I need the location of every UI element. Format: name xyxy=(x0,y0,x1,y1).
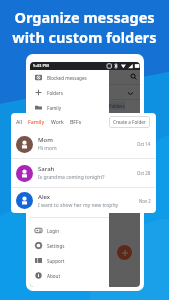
button[interactable]: Settings xyxy=(30,238,109,253)
staticText: Nov 2 xyxy=(139,198,151,204)
staticText: 5:43 PM xyxy=(33,63,49,69)
staticText: About xyxy=(47,273,61,279)
staticText: Mom xyxy=(38,136,53,144)
button[interactable]: About xyxy=(30,268,109,283)
button[interactable]: Blocked messages xyxy=(30,70,109,85)
button[interactable]: Login xyxy=(30,223,109,238)
staticText: All xyxy=(16,118,22,125)
button[interactable]: Mom xyxy=(11,130,156,158)
staticText: Work xyxy=(51,118,64,125)
button[interactable]: Alex xyxy=(11,188,156,213)
button[interactable]: Folders xyxy=(30,85,109,100)
button[interactable]: All xyxy=(16,118,22,125)
staticText: Is grandma coming tonight? xyxy=(38,174,105,181)
staticText: Family xyxy=(47,105,61,111)
staticText: Oct 14 xyxy=(137,141,151,147)
button[interactable]: Create a Folder xyxy=(109,116,150,128)
staticText: Organize messages xyxy=(14,7,155,27)
button[interactable]: New message xyxy=(117,245,132,260)
button[interactable]: Search xyxy=(130,73,137,80)
staticText: I want to show her my new trophy xyxy=(38,202,119,209)
staticText: BFFs xyxy=(70,118,82,125)
button[interactable]: Sarah xyxy=(11,159,156,187)
staticText: Family xyxy=(28,118,45,125)
staticText: Oct 28 xyxy=(137,170,151,176)
staticText: Alex xyxy=(38,193,51,201)
button[interactable]: Support xyxy=(30,253,109,268)
staticText: Folders xyxy=(47,90,63,96)
staticText: Folders xyxy=(109,103,125,109)
button[interactable]: Family xyxy=(28,118,45,125)
staticText: Blocked messages xyxy=(47,75,87,81)
staticText: Sarah xyxy=(38,165,55,173)
staticText: Login xyxy=(47,228,60,234)
button[interactable]: Work xyxy=(51,118,64,125)
button[interactable]: Family xyxy=(30,100,109,115)
staticText: with custom folders xyxy=(12,27,157,47)
button[interactable]: BFFs xyxy=(70,118,82,125)
staticText: Settings xyxy=(47,243,65,249)
staticText: Create a Folder xyxy=(113,119,146,125)
staticText: Hi mom xyxy=(38,145,57,152)
staticText: Support xyxy=(47,258,65,264)
